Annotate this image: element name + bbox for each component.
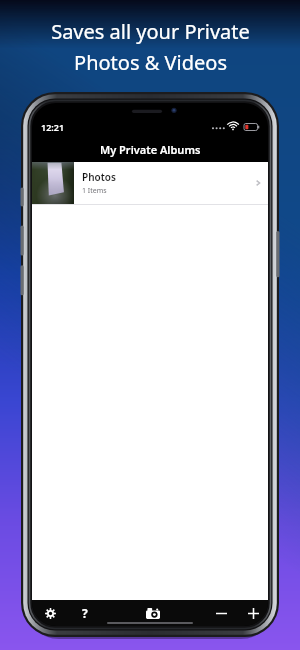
staticText: ?: [82, 605, 88, 621]
button[interactable]: Remove: [204, 600, 238, 626]
staticText: 1 Items: [82, 186, 107, 196]
button[interactable]: Add: [238, 600, 268, 626]
button[interactable]: Camera: [136, 600, 170, 626]
button[interactable]: Photos: [32, 162, 268, 204]
staticText: My Private Albums: [100, 142, 201, 157]
button[interactable]: Help: [68, 600, 102, 626]
staticText: Saves all your Private: [51, 18, 250, 45]
button[interactable]: Settings: [32, 600, 68, 626]
staticText: 12:21: [41, 121, 65, 133]
staticText: Photos: [82, 170, 116, 184]
staticText: Photos & Videos: [74, 49, 227, 76]
